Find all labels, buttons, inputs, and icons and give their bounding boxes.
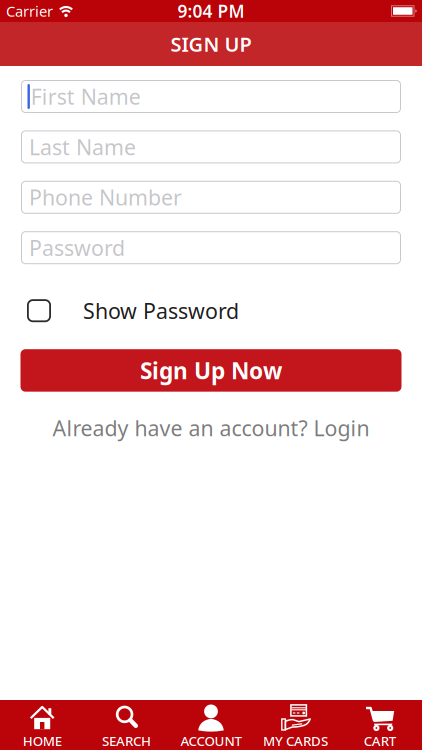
button[interactable]: First Name — [0, 80, 422, 113]
staticText: Carrier — [6, 1, 53, 21]
button[interactable]: Phone Number — [0, 181, 422, 214]
staticText: Phone Number — [29, 183, 182, 211]
button[interactable]: CART — [338, 698, 422, 750]
button[interactable]: SEARCH — [84, 698, 169, 750]
button[interactable]: MY CARDS — [253, 698, 338, 750]
staticText: HOME — [23, 732, 62, 750]
button[interactable]: Sign Up Now — [0, 349, 422, 392]
button[interactable]: ACCOUNT — [169, 698, 253, 750]
button[interactable]: Show Password — [0, 299, 422, 322]
staticText: First Name — [31, 82, 141, 111]
staticText: ACCOUNT — [180, 732, 241, 750]
button[interactable]: HOME — [0, 698, 84, 750]
button[interactable]: Last Name — [0, 130, 422, 163]
button[interactable]: Password — [0, 231, 422, 264]
staticText: SEARCH — [102, 732, 151, 750]
staticText: Show Password — [83, 296, 239, 325]
button[interactable]: Already have an account? Login — [52, 414, 369, 442]
staticText: MY CARDS — [263, 732, 328, 750]
staticText: Password — [29, 233, 125, 262]
staticText: CART — [364, 732, 396, 750]
staticText: Sign Up Now — [140, 355, 282, 385]
staticText: Already have an account? Login — [52, 414, 369, 442]
staticText: SIGN UP — [170, 31, 251, 57]
staticText: 9:04 PM — [177, 0, 244, 22]
staticText: Last Name — [29, 133, 136, 161]
